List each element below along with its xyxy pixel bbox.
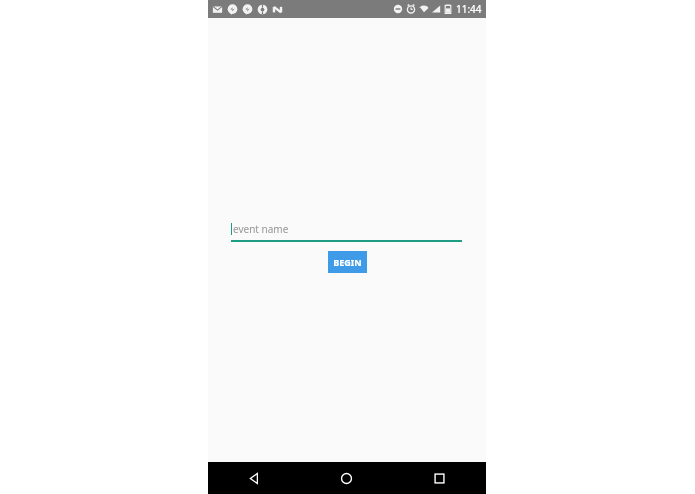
staticText: BEGIN (333, 256, 362, 268)
staticText: 11:44 (456, 2, 482, 16)
button[interactable]: Back (208, 462, 300, 494)
button[interactable]: event name (231, 216, 462, 242)
staticText: event name (233, 222, 289, 236)
button[interactable]: BEGIN (328, 251, 367, 273)
button[interactable]: Home (300, 462, 393, 494)
button[interactable]: Recent apps (393, 462, 486, 494)
